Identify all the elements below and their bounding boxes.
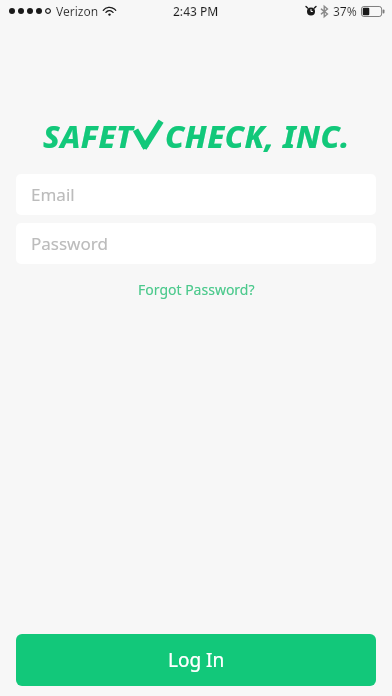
staticText: Log In xyxy=(168,647,225,673)
button[interactable]: Password xyxy=(16,223,376,264)
staticText: 37% xyxy=(333,3,357,19)
staticText: Password xyxy=(31,232,108,255)
button[interactable]: Email xyxy=(16,174,376,215)
staticText: CHECK, INC. xyxy=(165,115,350,157)
button[interactable]: Forgot Password? xyxy=(130,276,263,303)
staticText: Email xyxy=(31,183,75,206)
staticText: Verizon xyxy=(56,3,99,19)
staticText: Forgot Password? xyxy=(138,280,255,299)
staticText: SAFET xyxy=(43,115,134,157)
button[interactable]: Log In xyxy=(16,634,376,686)
staticText: 2:43 PM xyxy=(173,3,219,19)
